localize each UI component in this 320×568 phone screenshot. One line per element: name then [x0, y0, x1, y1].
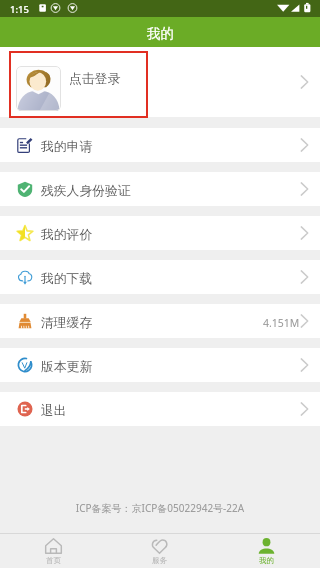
staticText: 点击登录	[69, 71, 121, 87]
button[interactable]: 首页	[0, 534, 106, 568]
button[interactable]: 我的申请	[0, 128, 320, 162]
staticText: 我的评价	[41, 227, 93, 243]
staticText: 我的	[259, 556, 274, 565]
staticText: 清理缓存	[41, 315, 93, 331]
staticText: 服务	[152, 556, 167, 565]
button[interactable]: 我的评价	[0, 216, 320, 250]
button[interactable]: 残疾人身份验证	[0, 172, 320, 206]
staticText: 4.151M	[263, 316, 300, 330]
button[interactable]: 版本更新	[0, 348, 320, 382]
staticText: 退出	[41, 403, 67, 419]
button[interactable]: 服务	[106, 534, 213, 568]
staticText: 残疾人身份验证	[41, 183, 131, 199]
button[interactable]: 我的	[213, 534, 320, 568]
staticText: 首页	[46, 556, 61, 565]
staticText: 版本更新	[41, 359, 93, 375]
staticText: 我的	[147, 25, 174, 42]
button[interactable]: 点击登录	[0, 47, 320, 117]
staticText: ICP备案号：京ICP备05022942号-22A	[0, 501, 320, 515]
staticText: 1:15	[10, 3, 29, 16]
button[interactable]: 清理缓存	[0, 304, 320, 338]
staticText: 我的申请	[41, 139, 93, 155]
button[interactable]: 我的下载	[0, 260, 320, 294]
button[interactable]: 退出	[0, 392, 320, 426]
staticText: 我的下载	[41, 271, 93, 287]
